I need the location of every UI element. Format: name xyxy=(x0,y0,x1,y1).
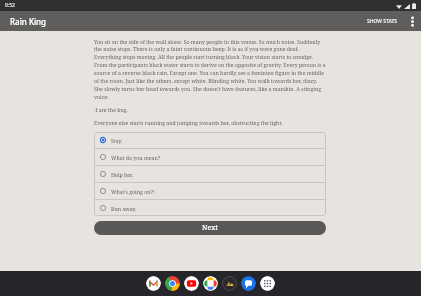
button[interactable]: Help her. xyxy=(94,166,326,182)
staticText: You sit on the side of the wall alone. S… xyxy=(94,38,326,100)
staticText: What's going on?! xyxy=(111,188,155,195)
button[interactable]: What's going on?! xyxy=(94,183,326,199)
staticText: Run away. xyxy=(111,205,137,212)
staticText: -I am the bug. xyxy=(94,106,128,113)
button[interactable]: Messages xyxy=(241,276,256,291)
button[interactable]: Photos xyxy=(203,276,218,291)
staticText: Stay. xyxy=(111,137,123,144)
staticText: Next xyxy=(202,223,218,233)
button[interactable]: Run away. xyxy=(94,200,326,216)
staticText: Rain King xyxy=(10,16,47,27)
staticText: 9:52 xyxy=(5,2,15,9)
button[interactable]: SHOW STATS xyxy=(362,14,403,29)
button[interactable]: Stay. xyxy=(94,132,326,148)
staticText: Everyone else starts running and jumping… xyxy=(94,119,283,126)
button[interactable]: Next xyxy=(94,221,326,235)
button[interactable]: What do you mean? xyxy=(94,149,326,165)
button[interactable]: All apps xyxy=(260,276,275,291)
button[interactable]: Gmail xyxy=(146,276,161,291)
staticText: SHOW STATS xyxy=(367,18,398,25)
button[interactable]: More options xyxy=(403,12,421,30)
button[interactable]: Camera xyxy=(222,276,237,291)
staticText: Help her. xyxy=(111,171,134,178)
button[interactable]: YouTube xyxy=(184,276,199,291)
button[interactable]: Chrome xyxy=(165,276,180,291)
staticText: What do you mean? xyxy=(111,154,161,161)
